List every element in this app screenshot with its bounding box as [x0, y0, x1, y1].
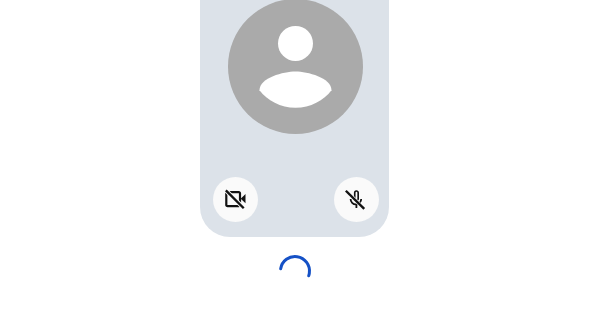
button[interactable]: Turn on camera: [213, 177, 258, 222]
button[interactable]: Unmute microphone: [334, 177, 379, 222]
